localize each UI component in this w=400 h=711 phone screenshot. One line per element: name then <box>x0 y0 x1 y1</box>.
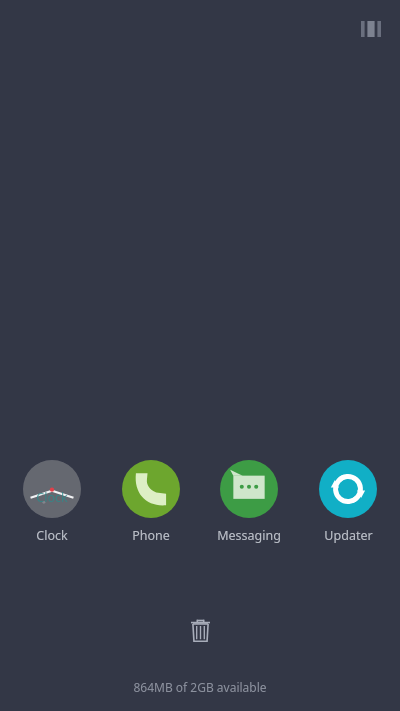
staticText: Clock <box>36 489 68 506</box>
button[interactable]: Phone <box>105 458 197 546</box>
staticText: Phone <box>132 527 170 544</box>
staticText: Updater <box>324 527 373 544</box>
staticText: 864MB of 2GB available <box>133 679 267 695</box>
staticText: Clock <box>36 527 68 544</box>
button[interactable]: Widgets <box>358 18 384 40</box>
button[interactable]: Messaging <box>203 458 295 546</box>
button[interactable]: Remove <box>180 610 220 650</box>
button[interactable]: Clock <box>6 458 98 546</box>
staticText: Messaging <box>217 527 281 544</box>
button[interactable]: Updater <box>302 458 394 546</box>
